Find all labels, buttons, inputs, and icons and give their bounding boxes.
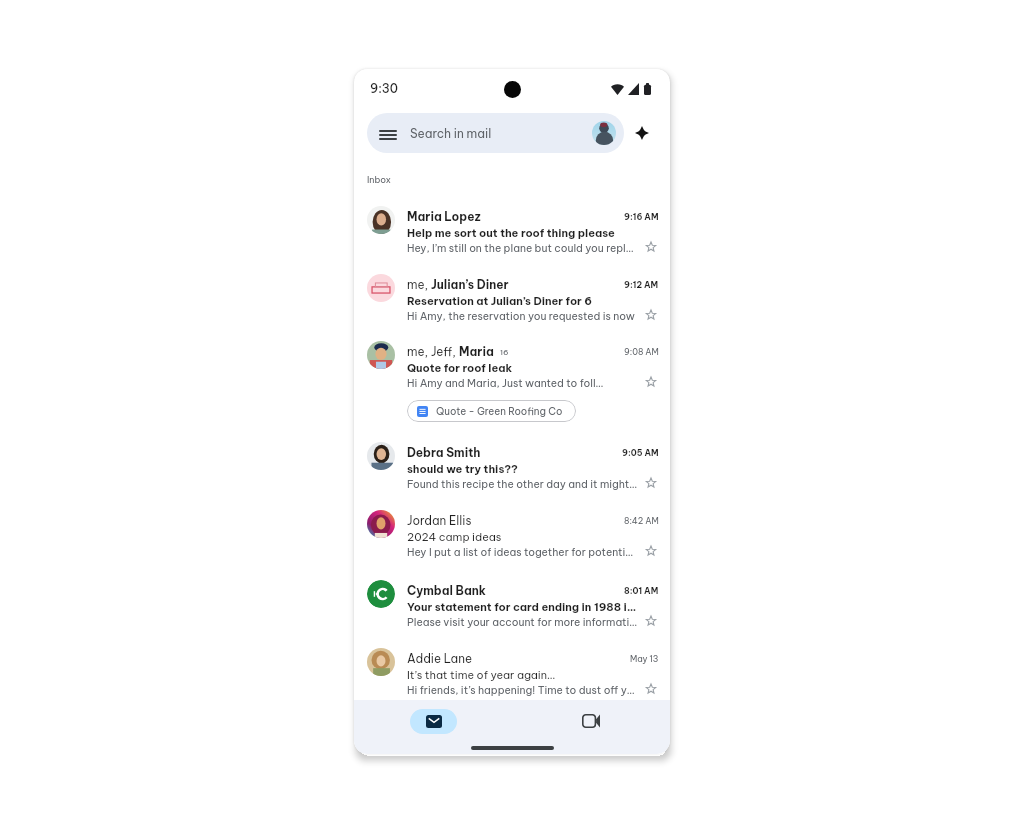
staticText: Maria	[459, 344, 494, 359]
button[interactable]: Star	[642, 544, 659, 558]
button[interactable]: Mail	[410, 709, 457, 734]
staticText: should we try this??	[407, 462, 518, 476]
button[interactable]: Meet	[576, 706, 606, 736]
staticText: 8:42 AM	[624, 515, 659, 526]
staticText: Debra Smith	[407, 445, 481, 460]
staticText: Addie Lane	[407, 651, 473, 666]
staticText: Hey, I’m still on the plane but could yo…	[407, 241, 642, 254]
staticText: Hi Amy, the reservation you requested is…	[407, 309, 642, 322]
button[interactable]: Star	[642, 682, 659, 696]
staticText: me,	[407, 277, 431, 292]
staticText: Maria Lopez	[407, 209, 481, 224]
staticText: 16	[500, 347, 509, 357]
staticText: 9:16 AM	[624, 211, 659, 222]
staticText: Search in mail	[410, 126, 492, 141]
button[interactable]: Jordan Ellis	[354, 513, 670, 558]
staticText: Jordan Ellis	[407, 513, 472, 528]
staticText: Hey I put a list of ideas together for p…	[407, 545, 642, 558]
staticText: Hi Amy and Maria, Just wanted to foll…	[407, 376, 642, 389]
staticText: Please visit your account for more infor…	[407, 615, 642, 628]
button[interactable]: me, Jeff,	[354, 344, 670, 422]
button[interactable]: Star	[642, 308, 659, 322]
staticText: 9:08 AM	[624, 346, 659, 357]
button[interactable]: Addie Lane	[354, 651, 670, 696]
staticText: 9:30	[370, 81, 398, 96]
button[interactable]: Cymbal Bank	[354, 583, 670, 628]
button[interactable]: Account	[592, 121, 616, 145]
staticText: May 13	[630, 653, 659, 664]
button[interactable]: Star	[642, 240, 659, 254]
staticText: Julian’s Diner	[431, 277, 509, 292]
button[interactable]: Star	[642, 476, 659, 490]
staticText: It’s that time of year again…	[407, 668, 556, 682]
staticText: Your statement for card ending in 1988 i…	[407, 600, 637, 614]
staticText: Found this recipe the other day and it m…	[407, 477, 642, 490]
staticText: 9:12 AM	[624, 279, 659, 290]
staticText: Inbox	[367, 174, 391, 185]
staticText: 8:01 AM	[624, 585, 659, 596]
staticText: Help me sort out the roof thing please	[407, 226, 615, 240]
button[interactable]: Search in mail	[367, 113, 624, 153]
staticText: Hi friends, it’s happening! Time to dust…	[407, 683, 642, 696]
staticText: Reservation at Julian’s Diner for 6	[407, 294, 593, 308]
staticText: me, Jeff,	[407, 344, 459, 359]
button[interactable]: Quote - Green Roofing Co	[407, 400, 576, 422]
button[interactable]: Maria Lopez	[354, 209, 670, 254]
staticText: Quote for roof leak	[407, 361, 513, 375]
staticText: Quote - Green Roofing Co	[436, 405, 563, 418]
button[interactable]: Star	[642, 375, 659, 389]
staticText: Cymbal Bank	[407, 583, 486, 598]
button[interactable]: Gemini	[633, 124, 651, 142]
staticText: 9:05 AM	[622, 447, 659, 458]
staticText: 2024 camp ideas	[407, 530, 502, 544]
button[interactable]: Debra Smith	[354, 445, 670, 490]
button[interactable]: Star	[642, 614, 659, 628]
button[interactable]: me,	[354, 277, 670, 322]
